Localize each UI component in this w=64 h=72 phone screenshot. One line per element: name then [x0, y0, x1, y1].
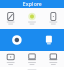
button[interactable]: Shortcut	[43, 8, 64, 29]
staticText: Explore	[22, 0, 41, 8]
button[interactable]: Shortcut	[43, 51, 64, 67]
button[interactable]: Device	[46, 36, 52, 44]
button[interactable]: Shortcut	[21, 51, 43, 67]
button[interactable]: Play	[12, 35, 22, 45]
button[interactable]: Shortcut	[0, 8, 21, 29]
button[interactable]: Shortcut	[21, 8, 43, 29]
button[interactable]: Shortcut	[0, 51, 21, 67]
